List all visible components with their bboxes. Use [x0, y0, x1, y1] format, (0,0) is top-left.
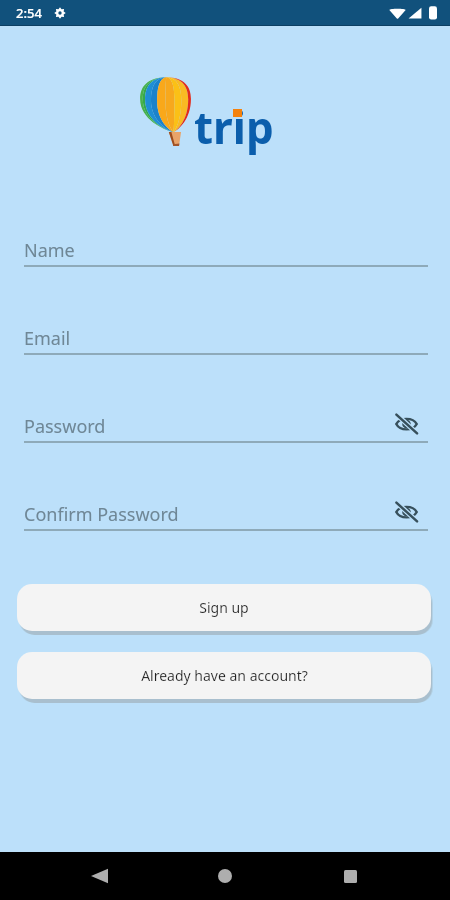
staticText: Confirm Password [24, 502, 179, 526]
staticText: Password [24, 414, 106, 438]
button[interactable]: Password [24, 410, 428, 443]
staticText: Email [24, 326, 71, 350]
staticText: Sign up [199, 598, 249, 617]
button[interactable]: Back [75, 852, 123, 900]
staticText: Already have an account? [141, 666, 308, 685]
button[interactable]: Already have an account? [17, 652, 431, 699]
button[interactable]: Sign up [17, 584, 431, 631]
button[interactable]: Recents [326, 852, 374, 900]
staticText: Name [24, 238, 75, 262]
button[interactable]: Email [24, 322, 428, 355]
staticText: 2:54 [16, 4, 42, 22]
button[interactable]: Name [24, 234, 428, 267]
button[interactable]: Toggle password visibility [392, 410, 420, 438]
button[interactable]: Toggle password visibility [392, 498, 420, 526]
button[interactable]: Confirm Password [24, 498, 428, 531]
button[interactable]: Home [201, 852, 249, 900]
staticText: trip [194, 97, 274, 157]
